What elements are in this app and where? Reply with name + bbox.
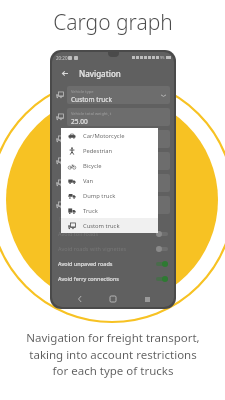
staticText: Truck: [83, 207, 98, 215]
button[interactable]: Avoid toll roads: [58, 226, 168, 241]
staticText: Custom truck: [83, 222, 120, 230]
staticText: Navigation: [79, 68, 121, 79]
staticText: Avoid unpaved roads: [58, 260, 156, 267]
staticText: Cargo graph: [53, 8, 173, 37]
staticText: Bicycle: [83, 162, 102, 170]
staticText: Pedestrian: [83, 147, 113, 155]
button[interactable]: Recent apps: [141, 293, 153, 305]
button[interactable]: Van: [61, 173, 158, 188]
staticText: Avoid toll roads: [58, 230, 156, 237]
staticText: Avoid ferry connections: [58, 275, 156, 282]
staticText: Route with weight restrictions: [59, 216, 130, 223]
staticText: Vehicle total weight, t: [71, 111, 112, 116]
staticText: Dump truck: [83, 192, 116, 200]
button[interactable]: Back: [58, 66, 72, 80]
button[interactable]: Truck: [61, 203, 158, 218]
button[interactable]: Avoid ferry connections: [58, 271, 168, 286]
staticText: 25.00: [71, 117, 88, 126]
staticText: Navigation for freight transport, taking…: [26, 330, 200, 378]
button[interactable]: Avoid unpaved roads: [58, 256, 168, 271]
button[interactable]: Avoid roads with vignettes: [58, 241, 168, 256]
staticText: Axle load, t: [71, 133, 92, 138]
button[interactable]: Length, m: [56, 196, 170, 214]
button[interactable]: Home: [107, 293, 119, 305]
staticText: Width, m: [71, 177, 88, 182]
button[interactable]: Back: [74, 293, 86, 305]
staticText: 95: [160, 55, 165, 60]
button[interactable]: Bicycle: [61, 158, 158, 173]
button[interactable]: Car/Motorcycle: [61, 128, 158, 143]
button[interactable]: Custom truck: [61, 218, 158, 233]
button[interactable]: Vehicle total weight, t: [56, 108, 170, 126]
staticText: Vehicle type: [71, 89, 94, 94]
staticText: Car/Motorcycle: [83, 132, 125, 140]
button[interactable]: Height, m: [56, 152, 170, 170]
button[interactable]: Width, m: [56, 174, 170, 192]
button[interactable]: Vehicle type: [56, 86, 170, 104]
staticText: Custom truck: [71, 95, 112, 104]
staticText: 20:20: [56, 55, 68, 61]
button[interactable]: Pedestrian: [61, 143, 158, 158]
staticText: Van: [83, 177, 94, 185]
staticText: Avoid roads with vignettes: [58, 245, 156, 252]
button[interactable]: Dump truck: [61, 188, 158, 203]
button[interactable]: Axle load, t: [56, 130, 170, 148]
